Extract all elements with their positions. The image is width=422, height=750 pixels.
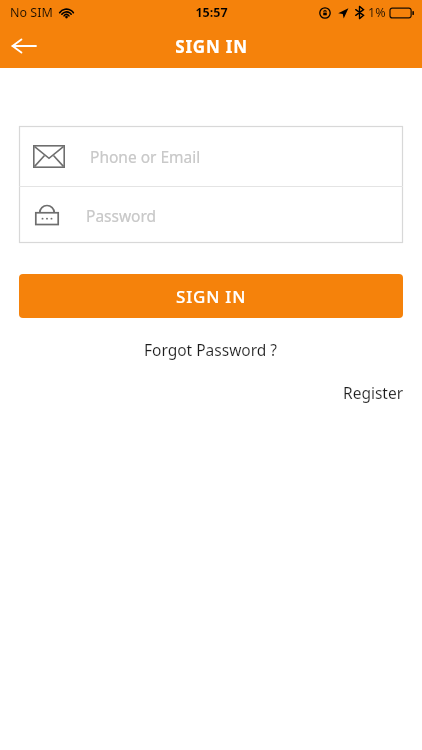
staticText: 15:57: [195, 4, 228, 21]
staticText: 1%: [368, 4, 386, 21]
staticText: Register: [343, 382, 404, 403]
staticText: Password: [86, 205, 157, 226]
staticText: Phone or Email: [90, 146, 201, 167]
button[interactable]: Password: [19, 187, 403, 243]
button[interactable]: Phone or Email: [19, 126, 403, 186]
staticText: SIGN IN: [176, 285, 247, 308]
staticText: No SIM: [10, 4, 53, 21]
staticText: Forgot Password ?: [144, 339, 278, 360]
button[interactable]: Forgot Password ?: [138, 337, 284, 362]
button[interactable]: Back: [0, 24, 48, 68]
staticText: SIGN IN: [175, 35, 248, 58]
button[interactable]: Register: [337, 380, 422, 405]
button[interactable]: SIGN IN: [19, 274, 403, 318]
